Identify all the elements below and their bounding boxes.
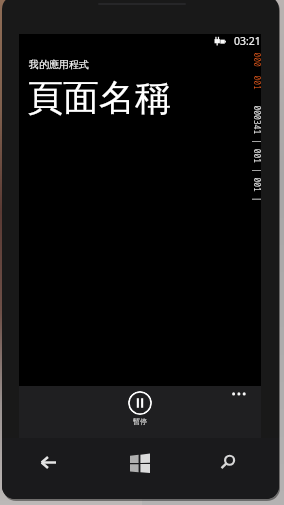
- staticText: 000341 | 001 | 001 | 00.0744: [251, 105, 262, 233]
- staticText: 我的應用程式: [29, 58, 89, 71]
- staticText: 03:21: [234, 34, 261, 48]
- staticText: 頁面名稱: [27, 75, 171, 120]
- staticText: 001: [251, 75, 262, 90]
- staticText: 暫停: [133, 417, 147, 426]
- button[interactable]: Search: [187, 438, 279, 499]
- staticText: 000: [251, 52, 262, 67]
- button[interactable]: Pause: [128, 391, 152, 415]
- button[interactable]: More options: [227, 387, 251, 411]
- button[interactable]: Back: [2, 438, 95, 499]
- button[interactable]: Start: [95, 438, 187, 499]
